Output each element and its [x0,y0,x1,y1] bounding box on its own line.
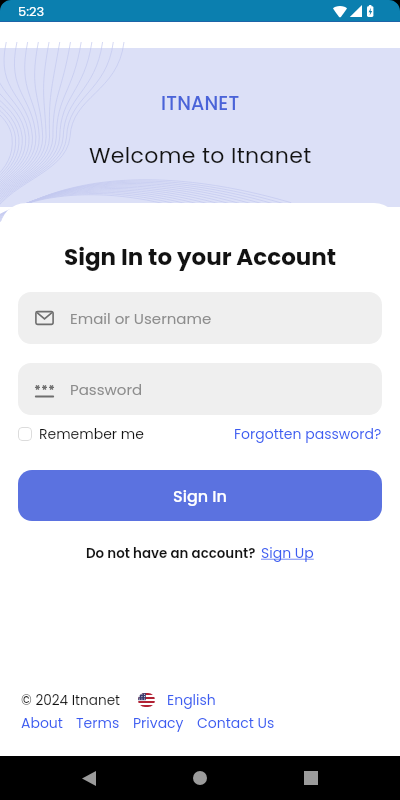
staticText: Do not have an account? [86,544,256,563]
staticText: Forgotten password? [234,424,382,444]
button[interactable]: Recents [296,763,326,793]
button[interactable]: Privacy [133,713,184,733]
button[interactable]: Remember me [18,424,144,444]
staticText: Sign Up [261,543,314,563]
button[interactable]: About [21,713,63,733]
button[interactable]: Sign In [18,470,382,521]
button[interactable]: Terms [76,713,120,733]
staticText: Privacy [133,713,184,733]
staticText: About [21,713,63,733]
button[interactable]: Email or Username [18,292,382,344]
staticText: Welcome to Itnanet [89,140,312,171]
staticText: English [167,690,216,710]
staticText: ITNANET [161,90,240,117]
staticText: 5:23 [18,2,45,20]
staticText: Sign In to your Account [64,241,337,273]
staticText: Remember me [39,424,144,444]
staticText: Sign In [173,485,227,507]
button[interactable]: Home [185,763,215,793]
staticText: © 2024 Itnanet [21,691,121,710]
staticText: Contact Us [197,713,275,733]
staticText: Password [70,379,143,400]
staticText: Terms [76,713,120,733]
button[interactable]: Sign Up [261,543,314,563]
button[interactable]: Back [74,763,104,793]
button[interactable]: Contact Us [197,713,275,733]
button[interactable]: Forgotten password? [234,424,382,444]
button[interactable]: Password [18,363,382,415]
staticText: Email or Username [70,308,212,329]
button[interactable]: English [167,690,216,710]
